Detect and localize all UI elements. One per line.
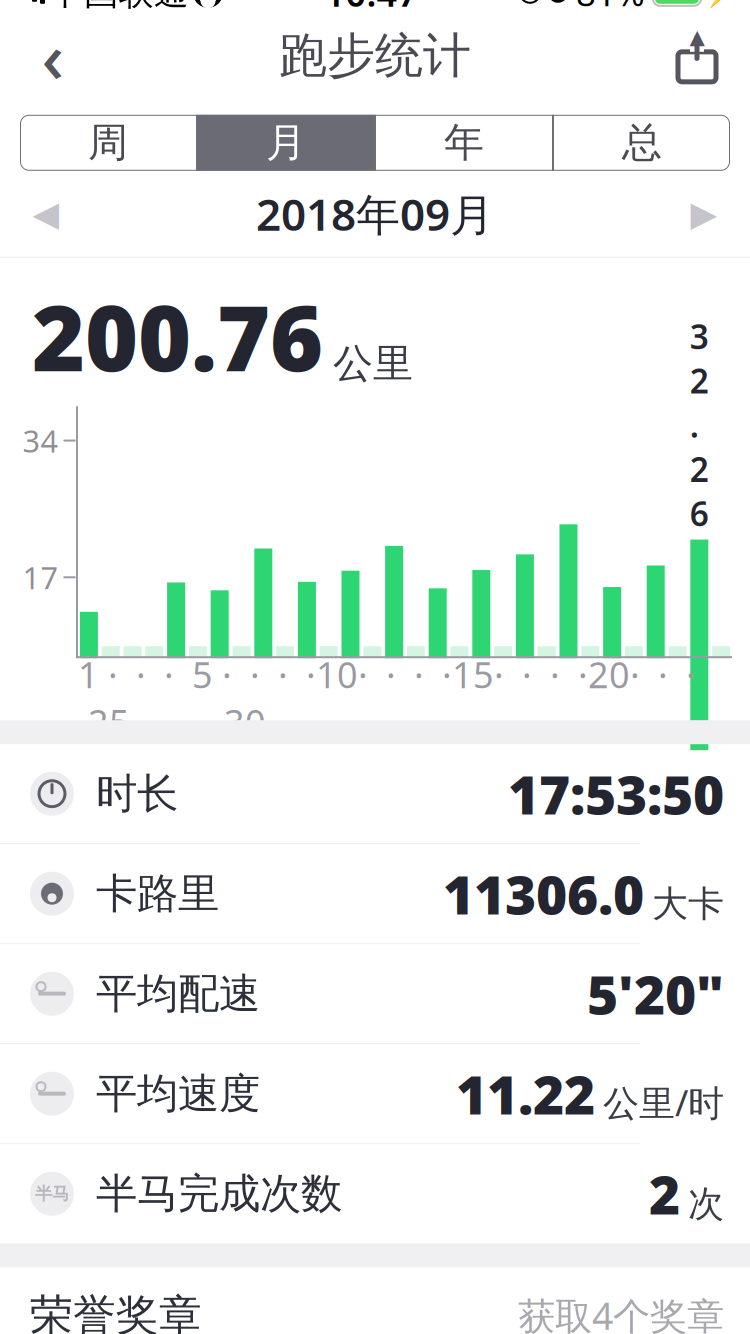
staticText: 公里: [333, 339, 413, 388]
staticText: ▲: [689, 25, 704, 48]
button[interactable]: Next month: [672, 182, 736, 246]
staticText: 10:47: [324, 0, 418, 17]
staticText: 总: [622, 118, 662, 167]
staticText: 月: [266, 118, 306, 167]
staticText: 200.76: [32, 276, 323, 396]
staticText: 年: [444, 118, 484, 167]
button[interactable]: 时长: [0, 744, 750, 844]
staticText: ‹: [41, 10, 64, 102]
staticText: 2018年09月: [256, 185, 494, 243]
button[interactable]: Back: [18, 20, 88, 92]
button[interactable]: 平均速度: [0, 1044, 750, 1144]
button[interactable]: 总: [554, 115, 730, 171]
button[interactable]: Previous month: [14, 182, 78, 246]
staticText: ⚡: [703, 0, 736, 8]
staticText: 次: [688, 1182, 724, 1226]
button[interactable]: 周: [20, 115, 196, 171]
staticText: 5'20": [587, 958, 724, 1029]
staticText: ◀: [32, 194, 59, 233]
staticText: 半马完成次数: [96, 1168, 342, 1219]
staticText: 81%: [576, 0, 645, 16]
staticText: ▶: [690, 194, 717, 233]
staticText: 平均速度: [96, 1068, 260, 1119]
staticText: 17: [22, 557, 58, 598]
staticText: 11306.0: [443, 858, 644, 929]
staticText: 2: [649, 1158, 680, 1229]
staticText: 大卡: [652, 882, 724, 926]
button[interactable]: 平均配速: [0, 944, 750, 1044]
staticText: 中国联通: [49, 0, 189, 14]
staticText: 获取4个奖章: [518, 1290, 724, 1334]
staticText: 32.26: [690, 314, 709, 535]
staticText: 公里/时: [603, 1078, 724, 1126]
button[interactable]: 半马: [0, 1144, 750, 1243]
button[interactable]: Share: [662, 20, 732, 92]
staticText: 时长: [96, 768, 178, 819]
staticText: 周: [88, 118, 128, 167]
staticText: 11.22: [456, 1058, 595, 1129]
staticText: 荣誉奖章: [30, 1289, 202, 1334]
staticText: 平均配速: [96, 968, 260, 1019]
staticText: 卡路里: [96, 868, 219, 919]
button[interactable]: 年: [376, 115, 552, 171]
button[interactable]: 荣誉奖章: [0, 1267, 750, 1334]
staticText: 17:53:50: [508, 758, 724, 829]
staticText: 跑步统计: [279, 26, 471, 85]
button[interactable]: 卡路里: [0, 844, 750, 944]
staticText: 1 · · · 5 · · · ·10· · · ·15· · · ·20· ·…: [78, 650, 705, 746]
staticText: 半马: [35, 1183, 69, 1204]
staticText: 34: [22, 420, 58, 461]
button[interactable]: 月: [198, 115, 374, 171]
